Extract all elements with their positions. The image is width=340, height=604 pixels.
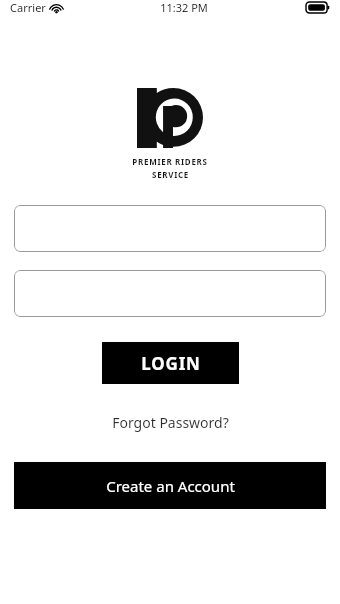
staticText: LOGIN	[141, 352, 201, 375]
button[interactable]: LOGIN	[102, 342, 239, 384]
staticText: Carrier	[10, 0, 46, 15]
staticText: PREMIER RIDERS	[132, 156, 208, 167]
staticText: 11:32 PM	[160, 0, 208, 15]
button[interactable]	[14, 270, 326, 317]
staticText: Forgot Password?	[112, 413, 229, 432]
button[interactable]: Create an Account	[14, 462, 326, 509]
staticText: SERVICE	[152, 169, 189, 180]
button[interactable]	[14, 205, 326, 252]
button[interactable]: Forgot Password?	[102, 409, 239, 436]
staticText: Create an Account	[106, 476, 235, 496]
